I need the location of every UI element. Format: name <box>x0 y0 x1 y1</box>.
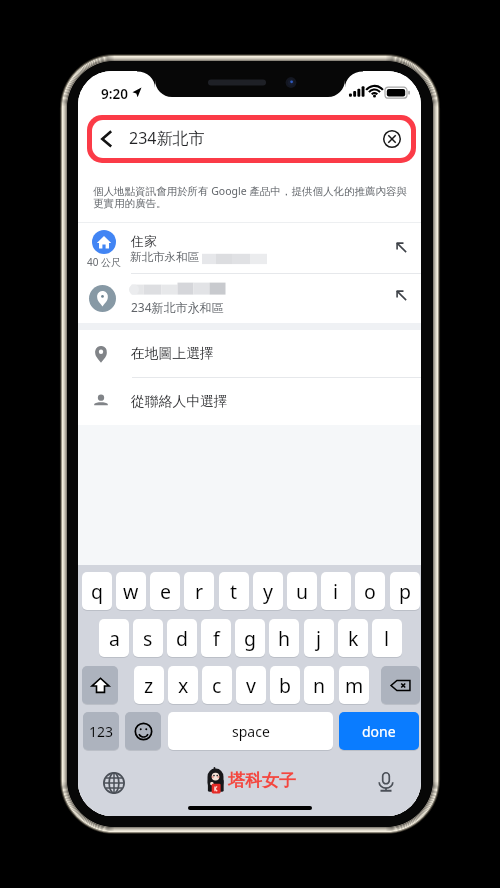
staticText: c <box>212 672 222 699</box>
button[interactable]: done <box>339 712 419 750</box>
staticText: space <box>232 722 270 741</box>
button[interactable]: a <box>99 619 129 657</box>
staticText: f <box>213 625 220 652</box>
staticText: b <box>279 672 291 699</box>
button[interactable]: b <box>270 666 300 704</box>
staticText: q <box>91 578 103 605</box>
button[interactable]: 234新北市永和區 <box>78 273 421 323</box>
staticText: 234新北市 <box>129 127 205 149</box>
staticText: done <box>362 722 396 741</box>
staticText: u <box>296 578 309 605</box>
staticText: m <box>345 672 364 699</box>
staticText: n <box>313 672 326 699</box>
staticText: o <box>364 578 376 605</box>
button[interactable]: m <box>339 666 369 704</box>
button[interactable]: f <box>201 619 231 657</box>
button[interactable]: y <box>253 572 283 610</box>
button[interactable]: c <box>202 666 232 704</box>
button[interactable]: l <box>372 619 402 657</box>
button[interactable]: Use suggestion <box>396 290 407 301</box>
button[interactable]: Backspace <box>381 666 420 704</box>
button[interactable]: q <box>82 572 112 610</box>
button[interactable]: x <box>168 666 198 704</box>
staticText: t <box>230 578 238 605</box>
button[interactable]: z <box>134 666 164 704</box>
button[interactable]: 從聯絡人中選擇 <box>78 378 421 426</box>
staticText: g <box>244 625 256 652</box>
button[interactable]: s <box>133 619 163 657</box>
staticText: h <box>278 625 291 652</box>
button[interactable]: Emoji keyboard <box>125 712 161 750</box>
staticText: a <box>109 625 120 652</box>
button[interactable]: p <box>390 572 420 610</box>
button[interactable]: Use suggestion <box>396 242 407 253</box>
staticText: 從聯絡人中選擇 <box>131 393 228 410</box>
staticText: 在地圖上選擇 <box>131 345 214 362</box>
button[interactable]: h <box>269 619 299 657</box>
button[interactable]: v <box>236 666 266 704</box>
button[interactable]: d <box>167 619 197 657</box>
button[interactable]: e <box>150 572 180 610</box>
button[interactable]: Shift <box>82 666 118 704</box>
staticText: e <box>160 578 171 605</box>
staticText: 個人地點資訊會用於所有 Google 產品中，提供個人化的推薦內容與更實用的廣告… <box>93 184 408 210</box>
staticText: 9:20 <box>101 85 128 103</box>
staticText: y <box>263 578 273 605</box>
staticText: j <box>316 625 322 652</box>
button[interactable]: r <box>184 572 214 610</box>
button[interactable]: k <box>338 619 368 657</box>
other: Shift <box>91 676 110 695</box>
staticText: z <box>144 672 154 699</box>
button[interactable]: t <box>219 572 249 610</box>
button[interactable]: 在地圖上選擇 <box>78 330 421 378</box>
staticText: w <box>123 578 139 605</box>
staticText: p <box>399 578 411 605</box>
button[interactable]: space <box>168 712 333 750</box>
staticText: 40 公尺 <box>87 255 122 269</box>
button[interactable]: w <box>116 572 146 610</box>
staticText: s <box>143 625 153 652</box>
button[interactable]: o <box>355 572 385 610</box>
button[interactable]: Switch language <box>103 772 125 794</box>
button[interactable]: 40 公尺 <box>78 223 421 273</box>
button[interactable]: i <box>321 572 351 610</box>
staticText: 234新北市永和區 <box>131 299 224 315</box>
staticText: 塔科女子 <box>228 770 296 791</box>
other: Emoji keyboard <box>134 722 153 741</box>
button[interactable]: Back <box>101 130 113 148</box>
staticText: d <box>176 625 188 652</box>
staticText: l <box>384 625 390 652</box>
staticText: x <box>178 672 189 699</box>
button[interactable]: Clear text <box>383 130 401 148</box>
other: Backspace <box>390 675 411 696</box>
staticText: 123 <box>89 722 114 741</box>
staticText: 新北市永和區 <box>130 250 199 264</box>
staticText: i <box>333 578 339 605</box>
button[interactable]: n <box>304 666 334 704</box>
button[interactable]: g <box>235 619 265 657</box>
button[interactable]: j <box>304 619 334 657</box>
staticText: k <box>348 625 359 652</box>
button[interactable]: u <box>287 572 317 610</box>
button[interactable]: 123 <box>83 712 119 750</box>
staticText: v <box>246 672 256 699</box>
button[interactable]: Dictation <box>375 771 397 793</box>
staticText: r <box>195 578 204 605</box>
staticText: 住家 <box>131 233 157 249</box>
button[interactable]: Back <box>92 120 411 158</box>
